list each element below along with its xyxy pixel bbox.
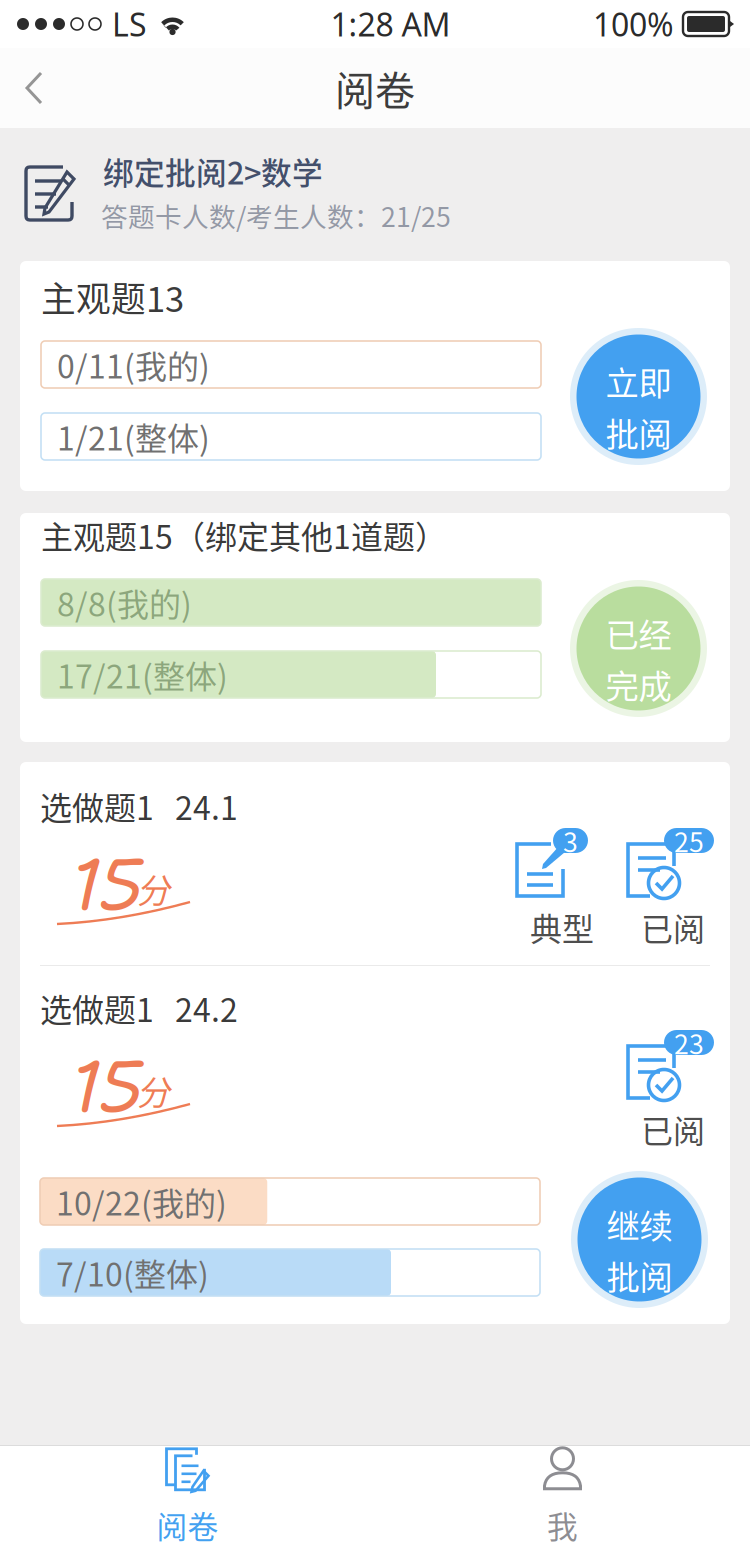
staticText: 继续	[606, 1200, 672, 1248]
button[interactable]: 立即	[570, 328, 707, 465]
button[interactable]: 已经	[570, 580, 707, 717]
staticText: 我	[547, 1503, 578, 1543]
button[interactable]: 25	[626, 828, 720, 950]
button[interactable]: 3	[515, 828, 609, 950]
staticText: 立即	[605, 357, 671, 405]
staticText: 1:28 AM	[330, 3, 450, 45]
staticText: 3	[563, 821, 578, 860]
staticText: 分	[137, 864, 170, 912]
staticText: 15	[70, 1038, 143, 1134]
staticText: 阅卷	[156, 1503, 218, 1543]
staticText: 17/21(整体)	[57, 651, 228, 698]
staticText: 批阅	[605, 408, 671, 456]
staticText: 已阅	[641, 904, 705, 950]
staticText: 25	[674, 821, 704, 860]
button[interactable]: 23	[626, 1030, 720, 1152]
staticText: 绑定批阅2>数学	[103, 149, 323, 193]
staticText: 8/8(我的)	[57, 579, 192, 626]
staticText: 主观题15（绑定其他1道题）	[41, 512, 447, 558]
staticText: 已阅	[641, 1106, 705, 1152]
staticText: 10/22(我的)	[56, 1178, 227, 1225]
staticText: 15	[70, 836, 143, 932]
staticText: 7/10(整体)	[56, 1249, 209, 1296]
staticText: 选做题1 24.2	[40, 985, 238, 1031]
staticText: 分	[137, 1066, 170, 1114]
staticText: 100%	[593, 3, 674, 45]
staticText: 1/21(整体)	[57, 413, 210, 460]
staticText: 典型	[530, 904, 594, 950]
button[interactable]: 阅卷	[0, 1446, 375, 1543]
staticText: 完成	[605, 660, 671, 708]
staticText: 选做题1 24.1	[40, 783, 238, 829]
button[interactable]: 继续	[571, 1171, 708, 1308]
staticText: 阅卷	[335, 59, 415, 117]
staticText: 已经	[605, 609, 671, 657]
staticText: 23	[674, 1023, 704, 1062]
staticText: 批阅	[606, 1251, 672, 1299]
staticText: 主观题13	[41, 272, 184, 322]
staticText: 0/11(我的)	[57, 341, 210, 388]
staticText: 答题卡人数/考生人数：21/25	[101, 196, 451, 235]
staticText: LS	[112, 3, 147, 45]
button[interactable]: Back	[0, 48, 70, 128]
button[interactable]: 我	[375, 1446, 750, 1543]
